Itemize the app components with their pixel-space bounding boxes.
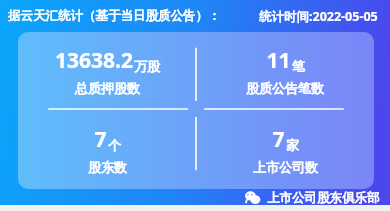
staticText: 7 <box>94 125 107 154</box>
staticText: 13638.2 <box>55 46 133 75</box>
button[interactable]: 11 <box>196 32 374 110</box>
button[interactable]: 7 <box>196 110 374 189</box>
staticText: 11 <box>266 46 291 75</box>
staticText: 个 <box>108 137 121 153</box>
staticText: 股质公告笔数 <box>246 80 324 96</box>
staticText: 家 <box>286 137 299 153</box>
staticText: 上市公司数 <box>253 159 318 175</box>
button[interactable]: 13638.2 <box>18 32 196 110</box>
button[interactable]: 7 <box>18 110 196 189</box>
staticText: 笔 <box>292 58 305 74</box>
button[interactable]: WeChat official account <box>245 190 380 206</box>
staticText: 上市公司股东俱乐部 <box>267 190 380 206</box>
other: WeChat official account <box>245 190 261 206</box>
staticText: 万股 <box>134 58 160 74</box>
staticText: 统计时间:2022-05-05 <box>259 8 378 25</box>
staticText: 总质押股数 <box>75 80 140 96</box>
staticText: 股东数 <box>88 159 127 175</box>
staticText: 据云天汇统计（基于当日股质公告）： <box>8 8 221 24</box>
staticText: 7 <box>272 125 285 154</box>
